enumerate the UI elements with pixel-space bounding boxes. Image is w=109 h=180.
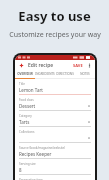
staticText: Food class <box>19 98 34 102</box>
staticText: NOTES <box>80 72 90 76</box>
staticText: OVERVIEW <box>17 72 33 76</box>
button[interactable]: OVERVIEW <box>15 70 35 78</box>
staticText: Category <box>19 114 32 118</box>
staticText: Edit recipe <box>28 62 54 69</box>
button[interactable]: DIRECTIONS <box>55 70 75 78</box>
button[interactable]: Recipes Keeper <box>19 151 91 157</box>
staticText: Collections <box>19 130 35 134</box>
button[interactable]: Lemon Tart <box>19 87 91 93</box>
staticText: INGREDIENTS <box>35 72 55 76</box>
staticText: Title <box>19 82 25 86</box>
button[interactable]: SAVE <box>73 63 83 68</box>
staticText: Dessert <box>19 103 36 109</box>
staticText: SAVE <box>73 63 83 68</box>
staticText: Recipes Keeper <box>19 151 52 157</box>
staticText: Easy to use <box>18 7 91 25</box>
staticText: 8 <box>19 167 22 173</box>
button[interactable]: Tarts <box>19 119 91 125</box>
button[interactable]: 8 <box>19 167 91 173</box>
button[interactable]: Dessert <box>19 103 91 109</box>
staticText: Source (book/magazine/website) <box>19 146 66 150</box>
staticText: Customize recipes your way <box>9 30 101 40</box>
button[interactable]: Add <box>18 62 25 69</box>
button[interactable]: NOTES <box>75 70 95 78</box>
button[interactable]: More options <box>86 62 92 68</box>
staticText: Tarts <box>19 119 30 125</box>
staticText: Preparation time <box>19 178 43 180</box>
staticText: DIRECTIONS <box>56 72 74 76</box>
button[interactable] <box>19 135 91 141</box>
staticText: Lemon Tart <box>19 87 43 93</box>
staticText: Serving size <box>19 162 36 166</box>
button[interactable]: INGREDIENTS <box>35 70 55 78</box>
